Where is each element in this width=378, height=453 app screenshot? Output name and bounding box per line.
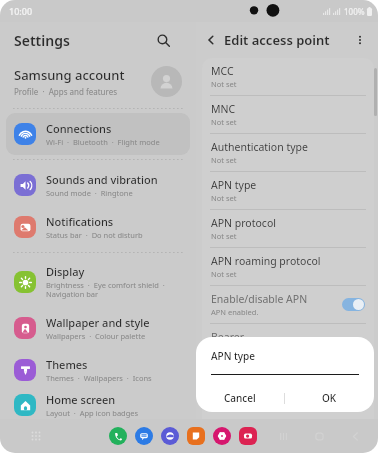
staticText: Notifications xyxy=(46,214,114,229)
staticText: 10:00 xyxy=(9,5,33,17)
staticText: Enable/disable APN xyxy=(211,292,308,306)
button[interactable]: MCC xyxy=(202,58,374,95)
staticText: Not set xyxy=(211,117,237,127)
staticText: Display xyxy=(46,264,85,279)
staticText: Status bar · Do not disturb xyxy=(46,230,143,240)
button[interactable]: Notes xyxy=(187,427,205,445)
button[interactable]: Sounds and vibration xyxy=(6,164,190,206)
button[interactable]: Messages xyxy=(135,427,153,445)
button[interactable]: MNC xyxy=(202,96,374,133)
staticText: Not set xyxy=(211,155,237,165)
staticText: Wallpapers · Colour palette xyxy=(46,331,146,341)
staticText: Layout · App icon badges xyxy=(46,408,139,418)
button[interactable]: Apps xyxy=(26,426,46,446)
button[interactable]: Gallery xyxy=(213,427,231,445)
staticText: APN roaming protocol xyxy=(211,254,321,268)
button[interactable]: Enable or disable APN xyxy=(342,298,365,311)
staticText: APN type xyxy=(211,349,256,363)
staticText: APN enabled. xyxy=(211,307,259,317)
button[interactable]: Display xyxy=(6,257,190,307)
button[interactable]: APN type xyxy=(202,172,374,209)
staticText: APN protocol xyxy=(211,216,276,230)
staticText: Bearer xyxy=(211,330,245,344)
button[interactable]: Search xyxy=(150,27,176,53)
button[interactable]: APN protocol xyxy=(202,210,374,247)
button[interactable]: Phone xyxy=(109,427,127,445)
staticText: Not set xyxy=(211,231,237,241)
staticText: MNC xyxy=(211,102,236,116)
button[interactable]: Themes xyxy=(6,349,190,391)
staticText: Samsung account xyxy=(14,66,125,84)
button[interactable]: Wallpaper and style xyxy=(6,307,190,349)
button[interactable]: Notifications xyxy=(6,206,190,248)
staticText: Home screen xyxy=(46,392,116,407)
button[interactable]: OK xyxy=(285,384,374,412)
staticText: Not set xyxy=(211,193,237,203)
button[interactable]: Bearer xyxy=(202,324,374,361)
staticText: Themes · Wallpapers · Icons xyxy=(46,373,152,383)
staticText: Connections xyxy=(46,121,112,136)
staticText: 100% xyxy=(344,6,365,17)
button[interactable]: Camera xyxy=(239,427,257,445)
button[interactable]: Connections xyxy=(6,113,190,155)
staticText: OK xyxy=(322,391,337,405)
staticText: Not set xyxy=(211,345,237,355)
button[interactable]: Enable/disable APN xyxy=(202,286,374,323)
staticText: Sounds and vibration xyxy=(46,172,158,187)
button[interactable]: More options xyxy=(348,28,372,52)
button[interactable]: Samsung account xyxy=(0,58,196,104)
staticText: Not set xyxy=(211,79,237,89)
staticText: Wi-Fi · Bluetooth · Flight mode xyxy=(46,137,160,147)
staticText: Themes xyxy=(46,357,88,372)
staticText: Brightness · Eye comfort shield · Naviga… xyxy=(46,280,165,300)
button[interactable]: Internet xyxy=(161,427,179,445)
staticText: Authentication type xyxy=(211,140,308,154)
button[interactable]: Home screen xyxy=(6,391,190,419)
staticText: Wallpaper and style xyxy=(46,315,150,330)
staticText: Not set xyxy=(211,269,237,279)
staticText: MCC xyxy=(211,64,234,78)
button[interactable]: APN roaming protocol xyxy=(202,248,374,285)
staticText: Profile · Apps and features xyxy=(14,86,118,97)
button[interactable]: Authentication type xyxy=(202,134,374,171)
staticText: Sound mode · Ringtone xyxy=(46,188,133,198)
staticText: Settings xyxy=(14,31,70,50)
staticText: Edit access point xyxy=(224,31,330,49)
staticText: Cancel xyxy=(224,391,256,405)
staticText: APN type xyxy=(211,178,257,192)
button[interactable]: Cancel xyxy=(196,384,284,412)
button[interactable]: Back xyxy=(199,28,223,52)
